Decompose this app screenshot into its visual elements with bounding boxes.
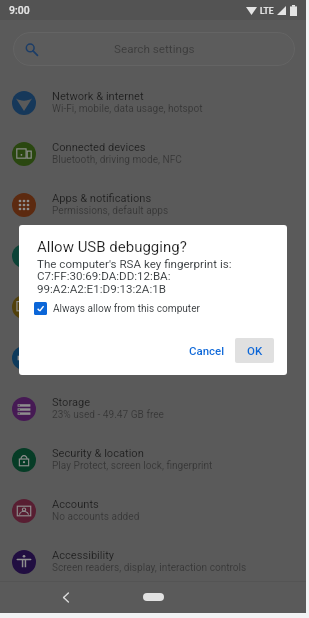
button[interactable]: OK — [235, 338, 274, 363]
staticText: Permissions, default apps — [52, 205, 169, 217]
button[interactable]: Accessibility — [0, 536, 306, 587]
button[interactable]: Cancel — [185, 338, 229, 363]
button[interactable]: Security & location — [0, 434, 306, 485]
staticText: 100% - 5h 30m left — [52, 256, 136, 268]
staticText: No accounts added — [52, 511, 140, 523]
staticText: Network & internet — [52, 90, 144, 103]
staticText: Allow USB debugging? — [37, 238, 187, 256]
button[interactable]: Sound — [0, 332, 306, 383]
staticText: Security & location — [52, 447, 144, 460]
button[interactable]: Search settings — [13, 32, 295, 66]
staticText: LTE — [260, 6, 274, 16]
staticText: Apps & notifications — [52, 192, 152, 205]
button[interactable]: Network & internet — [0, 77, 306, 128]
staticText: Display — [52, 294, 88, 307]
staticText: The computer's RSA key fingerprint is: C… — [37, 257, 232, 296]
button[interactable]: Always allow from this computer — [34, 302, 200, 315]
staticText: Always allow from this computer — [53, 303, 200, 315]
staticText: Cancel — [189, 344, 225, 357]
staticText: Storage — [52, 396, 91, 409]
staticText: Accessibility — [52, 549, 115, 562]
button[interactable]: Display — [0, 281, 306, 332]
staticText: Screen readers, display, interaction con… — [52, 562, 247, 574]
staticText: Accounts — [52, 498, 99, 511]
staticText: Search settings — [114, 42, 195, 56]
staticText: Connected devices — [52, 141, 146, 154]
staticText: 23% used - 49.47 GB free — [52, 409, 164, 421]
button[interactable]: Home — [133, 587, 173, 607]
staticText: Play Protect, screen lock, fingerprint — [52, 460, 213, 472]
staticText: OK — [247, 344, 263, 357]
button[interactable]: Connected devices — [0, 128, 306, 179]
button[interactable]: Accounts — [0, 485, 306, 536]
staticText: 9:00 — [9, 4, 30, 16]
staticText: Wi-Fi, mobile, data usage, hotspot — [52, 103, 203, 115]
staticText: Battery — [52, 243, 88, 256]
button[interactable]: Apps & notifications — [0, 179, 306, 230]
button[interactable]: Storage — [0, 383, 306, 434]
button[interactable]: Battery — [0, 230, 306, 281]
staticText: Wallpaper, sleep, font size — [52, 307, 168, 319]
staticText: Bluetooth, driving mode, NFC — [52, 154, 182, 166]
button[interactable]: Back — [54, 585, 78, 609]
